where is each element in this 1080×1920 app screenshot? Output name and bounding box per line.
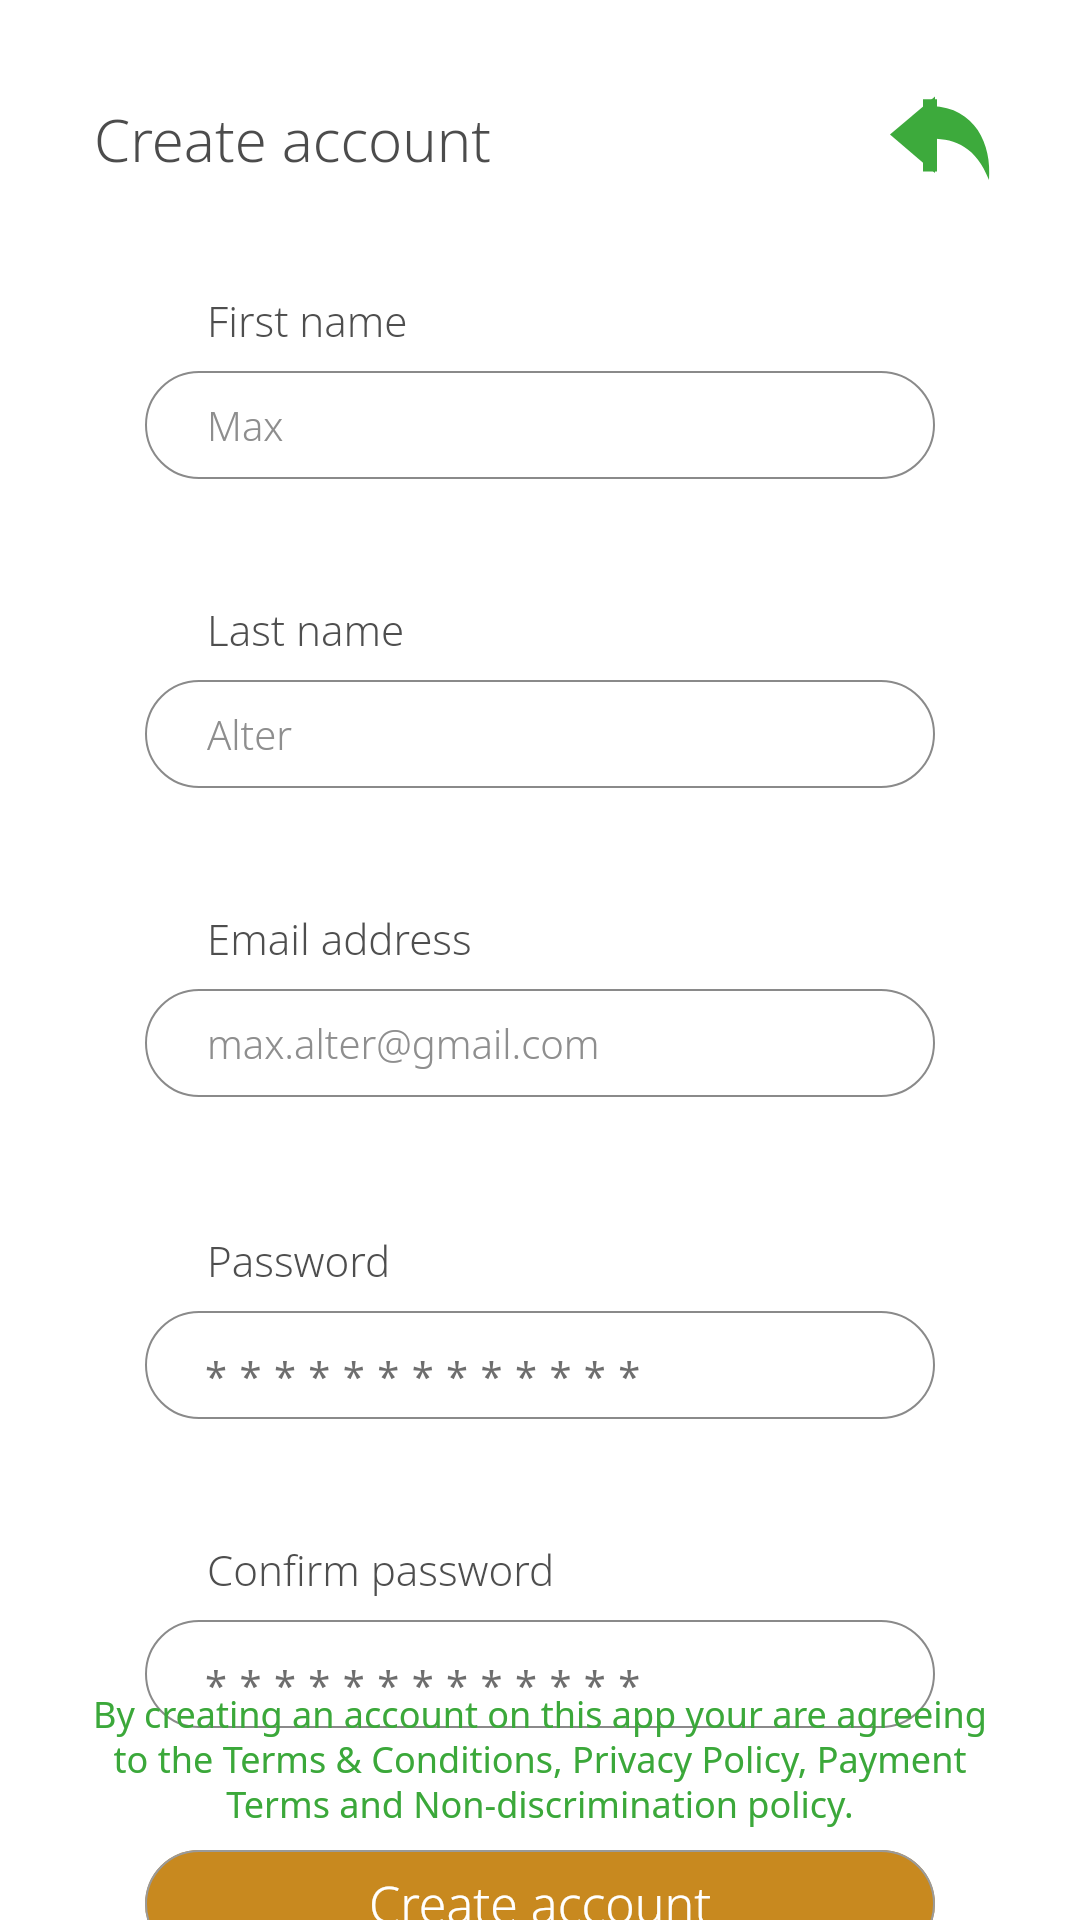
button[interactable]: * * * * * * * * * * * * * — [145, 1311, 935, 1419]
button[interactable]: Alter — [145, 680, 935, 788]
button[interactable]: max.alter@gmail.com — [145, 989, 935, 1097]
staticText: Create account — [369, 1870, 712, 1920]
staticText: Alter — [207, 707, 293, 761]
button[interactable]: By creating an account on this app your … — [90, 1690, 990, 1829]
staticText: First name — [207, 292, 408, 349]
staticText: max.alter@gmail.com — [207, 1016, 600, 1070]
button[interactable]: Back — [890, 94, 990, 180]
button[interactable]: * * * * * * * * * * * * * — [145, 1620, 935, 1728]
staticText: Create account — [94, 100, 492, 179]
button[interactable]: Max — [145, 371, 935, 479]
staticText: * * * * * * * * * * * * * — [205, 1657, 642, 1711]
staticText: Email address — [207, 910, 472, 967]
staticText: * * * * * * * * * * * * * — [205, 1348, 642, 1402]
staticText: Password — [207, 1232, 391, 1289]
staticText: Max — [207, 398, 284, 452]
button[interactable]: Create account — [145, 1850, 935, 1920]
staticText: Last name — [207, 601, 405, 658]
staticText: Confirm password — [207, 1541, 555, 1598]
staticText: By creating an account on this app your … — [90, 1690, 990, 1829]
